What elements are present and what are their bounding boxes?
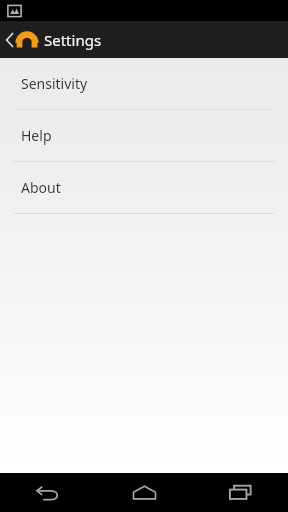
button[interactable]: Navigate up (0, 21, 108, 58)
button[interactable]: Sensitivity (0, 58, 288, 109)
staticText: About (21, 178, 61, 197)
button[interactable]: About (0, 162, 288, 213)
staticText: Sensitivity (21, 74, 88, 93)
button[interactable]: Back (0, 473, 96, 512)
staticText: Help (21, 126, 52, 145)
button[interactable]: Help (0, 110, 288, 161)
staticText: Settings (44, 30, 102, 50)
other: Navigate up (4, 31, 15, 49)
button[interactable]: Recent apps (192, 473, 288, 512)
button[interactable]: Home (96, 473, 192, 512)
